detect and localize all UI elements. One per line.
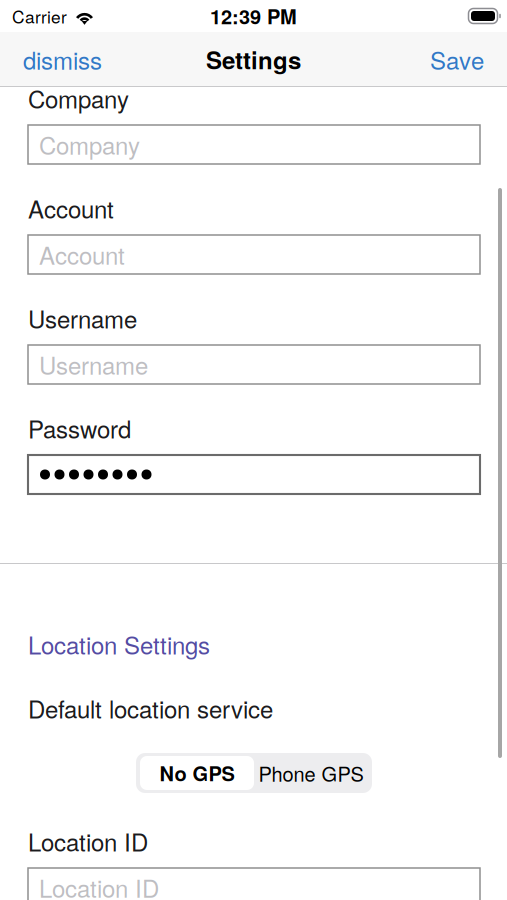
button[interactable]: Company [28, 125, 480, 164]
staticText: Carrier [12, 4, 67, 28]
staticText: Account [28, 191, 114, 225]
staticText: Location ID [39, 870, 159, 900]
staticText: dismiss [23, 42, 102, 77]
staticText: Company [39, 127, 140, 162]
button[interactable]: Location Settings [28, 627, 210, 661]
staticText: 12:39 PM [210, 2, 297, 30]
staticText: Settings [206, 42, 301, 77]
button[interactable]: Save [422, 32, 492, 87]
staticText: Phone GPS [258, 759, 363, 787]
staticText: Account [39, 237, 125, 272]
staticText: Password [28, 411, 131, 445]
staticText: Save [430, 42, 484, 77]
staticText: Location ID [28, 824, 148, 858]
staticText: Username [39, 347, 148, 382]
button[interactable]: Username [28, 345, 480, 384]
staticText: Location Settings [28, 627, 210, 661]
button[interactable] [28, 455, 480, 494]
staticText: No GPS [159, 759, 234, 787]
staticText: Username [28, 301, 137, 335]
staticText: Default location service [28, 691, 273, 725]
button[interactable]: Location ID [28, 868, 480, 900]
button[interactable]: dismiss [15, 32, 110, 87]
staticText: Company [28, 81, 129, 115]
button[interactable]: Account [28, 235, 480, 274]
button[interactable]: No GPS [140, 756, 254, 790]
button[interactable]: Phone GPS [254, 756, 368, 790]
